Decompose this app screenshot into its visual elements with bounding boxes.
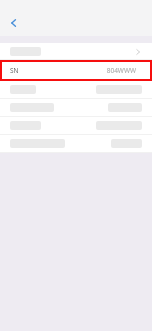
button[interactable] xyxy=(0,99,152,116)
button[interactable]: Back xyxy=(4,13,24,33)
staticText: SN xyxy=(10,66,19,75)
button[interactable]: SN xyxy=(0,60,152,81)
staticText: 804WWW xyxy=(106,66,136,75)
button[interactable] xyxy=(0,117,152,134)
button[interactable] xyxy=(0,43,152,59)
button[interactable] xyxy=(0,135,152,152)
button[interactable] xyxy=(0,81,152,98)
